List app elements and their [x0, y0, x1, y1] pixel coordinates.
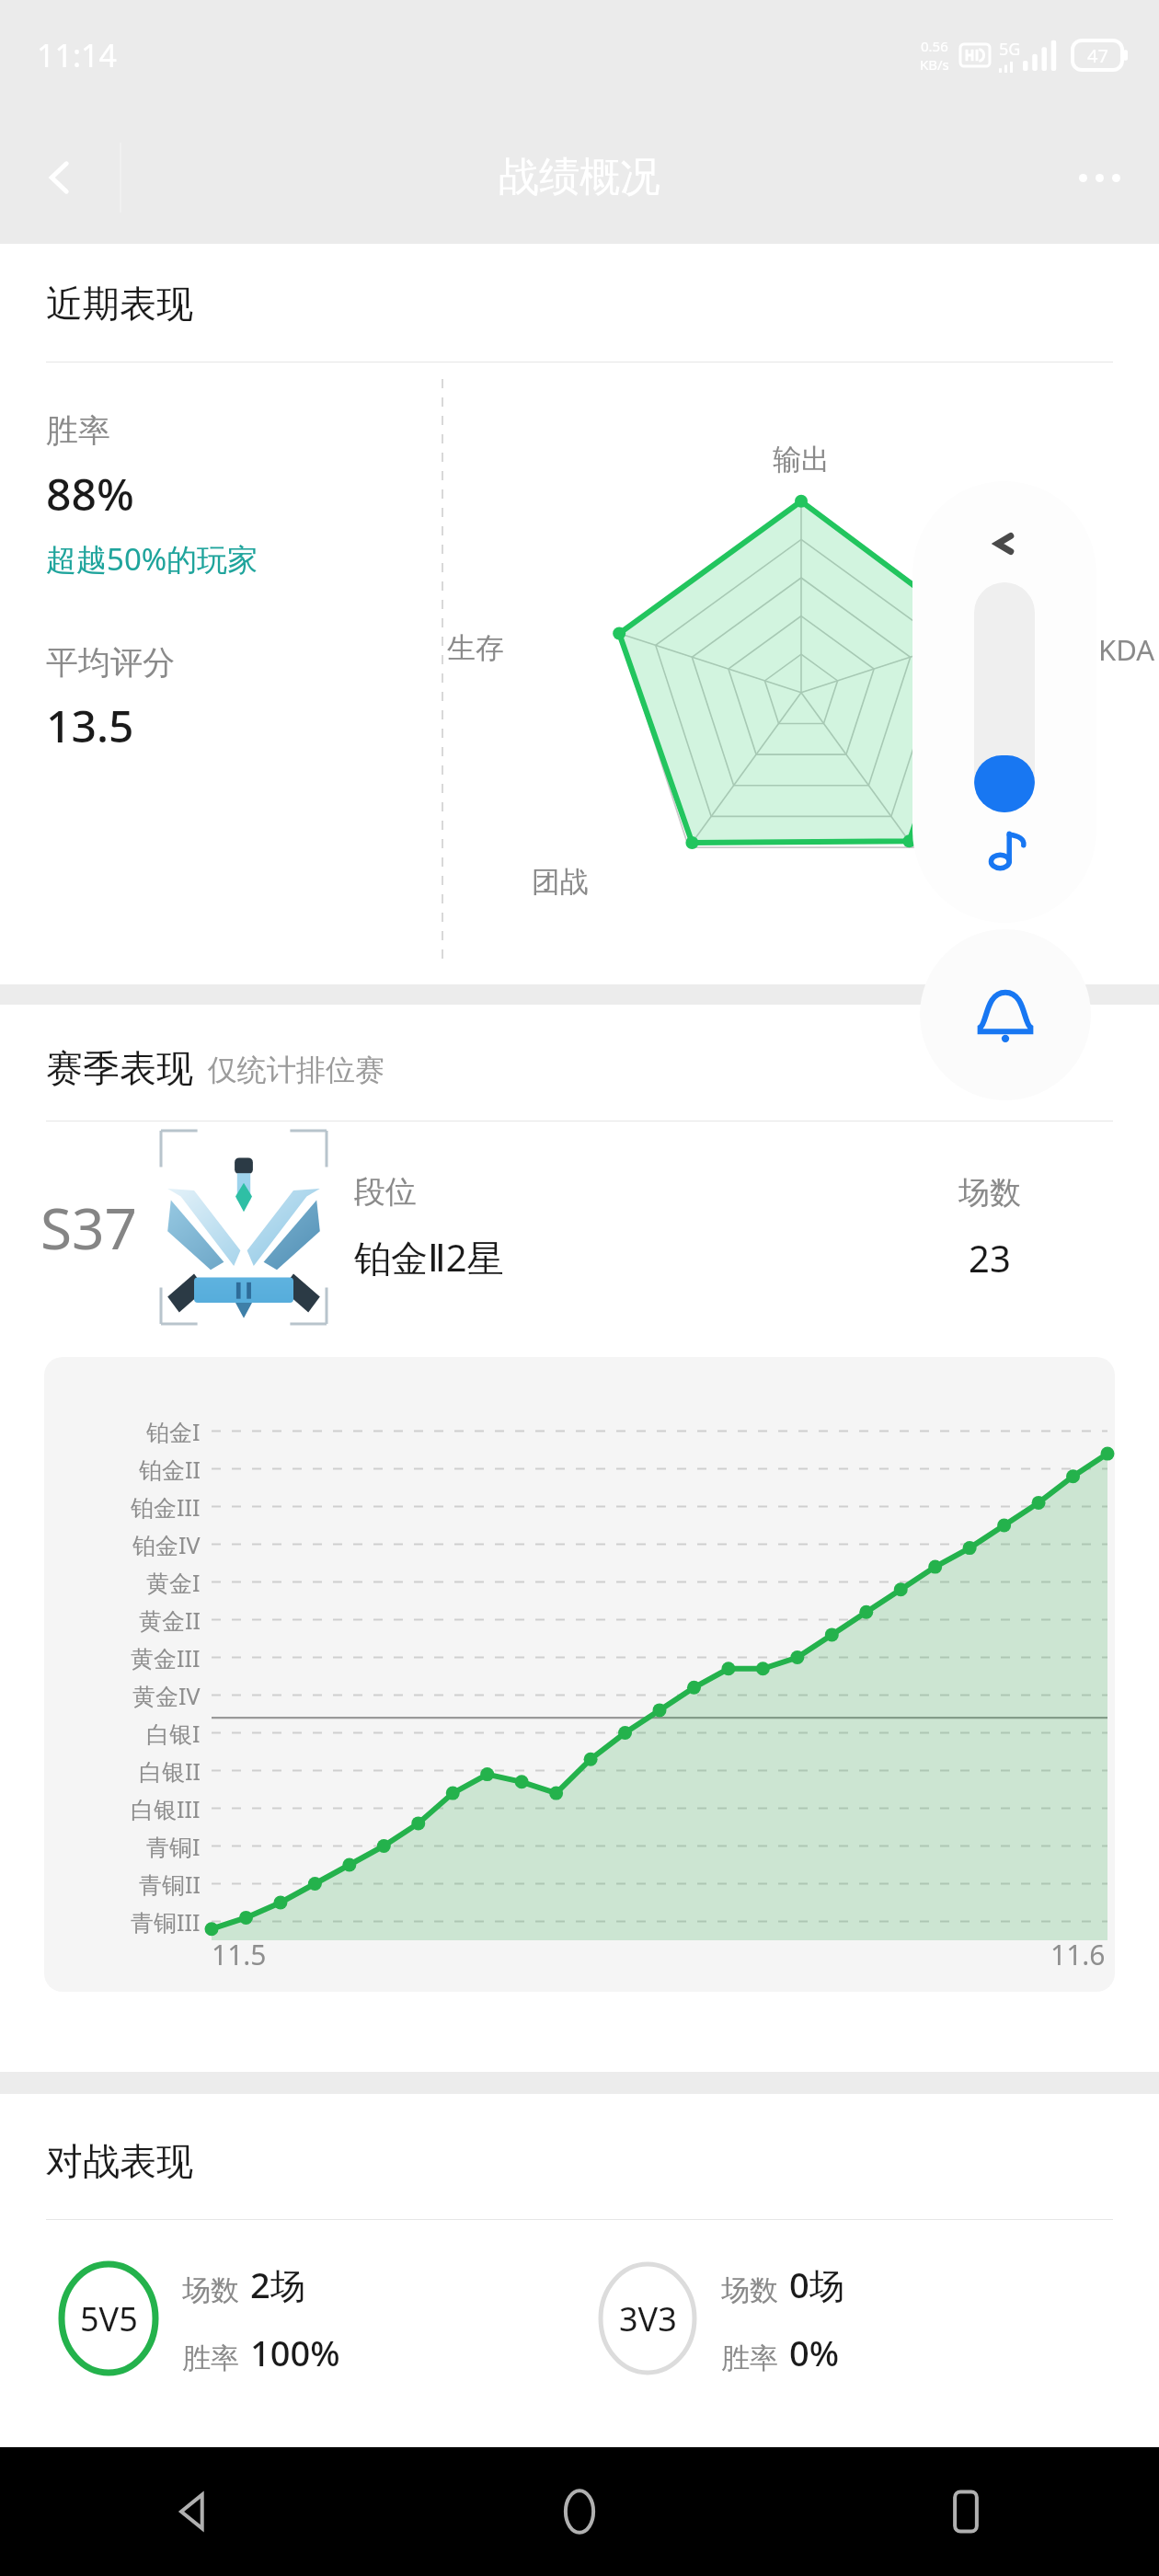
- staticText: 黄金I: [146, 1567, 201, 1598]
- staticText: 2场: [250, 2260, 305, 2308]
- button[interactable]: Volume slider: [974, 582, 1035, 812]
- staticText: 仅统计排位赛: [208, 1052, 384, 1088]
- staticText: 青铜I: [146, 1831, 201, 1862]
- staticText: 0.56: [921, 37, 948, 55]
- staticText: 47: [1087, 43, 1108, 68]
- staticText: 铂金Ⅱ2星: [354, 1232, 504, 1282]
- staticText: 生存: [447, 630, 504, 666]
- staticText: 场数: [721, 2272, 778, 2308]
- button[interactable]: Back: [0, 2447, 386, 2576]
- staticText: 黄金II: [139, 1604, 201, 1636]
- staticText: 平均评分: [46, 642, 175, 683]
- staticText: 白银II: [139, 1755, 201, 1787]
- staticText: 11.5: [212, 1936, 267, 1973]
- staticText: 输出: [773, 442, 830, 477]
- staticText: 23: [969, 1233, 1011, 1282]
- staticText: 团战: [532, 864, 589, 900]
- staticText: 青铜III: [131, 1906, 201, 1938]
- button[interactable]: Media volume: [971, 818, 1038, 884]
- button[interactable]: 3V3: [598, 2260, 1159, 2376]
- staticText: S37: [40, 1189, 137, 1266]
- button[interactable]: Collapse volume panel: [912, 481, 1096, 923]
- staticText: 场数: [182, 2272, 239, 2308]
- staticText: 黄金III: [131, 1642, 201, 1673]
- staticText: 黄金IV: [132, 1680, 201, 1711]
- staticText: 0%: [789, 2329, 840, 2376]
- staticText: 白银I: [146, 1718, 201, 1749]
- staticText: 超越50%的玩家: [46, 538, 258, 580]
- staticText: 胜率: [46, 410, 110, 451]
- staticText: 0场: [789, 2260, 844, 2308]
- staticText: 胜率: [182, 2340, 239, 2376]
- staticText: 对战表现: [46, 2138, 193, 2184]
- staticText: 铂金II: [139, 1454, 201, 1485]
- staticText: 5V5: [80, 2296, 138, 2341]
- button[interactable]: Back: [18, 136, 101, 219]
- staticText: 胜率: [721, 2340, 778, 2376]
- staticText: 白银III: [131, 1793, 201, 1824]
- button[interactable]: Home: [386, 2447, 773, 2576]
- staticText: 3V3: [619, 2296, 677, 2341]
- button[interactable]: Recent apps: [773, 2447, 1159, 2576]
- staticText: 11:14: [37, 34, 117, 76]
- staticText: 铂金IV: [132, 1529, 201, 1560]
- button[interactable]: 5V5: [59, 2260, 579, 2376]
- staticText: 青铜II: [139, 1869, 201, 1900]
- staticText: 100%: [250, 2329, 340, 2376]
- staticText: 88%: [46, 464, 134, 523]
- staticText: 11.6: [1050, 1936, 1106, 1973]
- staticText: KDA: [1098, 630, 1155, 669]
- staticText: 铂金III: [131, 1491, 201, 1523]
- staticText: 战绩概况: [499, 152, 660, 202]
- staticText: 5G: [999, 38, 1021, 61]
- staticText: 段位: [354, 1172, 417, 1212]
- staticText: 场数: [958, 1173, 1021, 1213]
- button[interactable]: Ringer volume: [920, 929, 1091, 1100]
- staticText: 赛季表现: [46, 1045, 193, 1091]
- staticText: 铂金I: [146, 1416, 201, 1447]
- staticText: KB/s: [920, 55, 949, 74]
- staticText: 13.5: [46, 696, 134, 755]
- staticText: 近期表现: [46, 281, 193, 327]
- button[interactable]: Collapse volume panel: [977, 516, 1032, 571]
